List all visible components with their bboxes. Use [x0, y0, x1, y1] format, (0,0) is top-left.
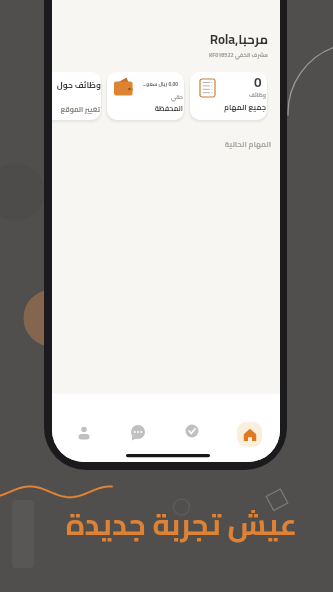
button[interactable] [176, 422, 208, 450]
staticText: وظائف حول [56, 77, 101, 93]
button[interactable]: 0.00 ريال سعو... [107, 72, 184, 120]
staticText: جميع المهام [224, 100, 266, 114]
staticText: مشرف الخفي KF018522 [209, 50, 268, 60]
button[interactable] [68, 422, 100, 450]
staticText: تغيير الموقع [60, 103, 100, 116]
staticText: حقي [171, 92, 183, 102]
staticText: 0.00 ريال سعو... [142, 79, 178, 88]
staticText: مرحبا,Rola [210, 27, 268, 51]
staticText: 0 [254, 72, 262, 94]
button[interactable] [237, 422, 262, 447]
staticText: المحفظة [154, 102, 183, 115]
staticText: المهام الحالية [224, 137, 271, 151]
button[interactable]: وظائف حول [52, 72, 101, 120]
button[interactable] [122, 422, 154, 450]
staticText: عيش تجربة جديدة [65, 496, 297, 552]
staticText: وظائف [248, 90, 266, 100]
button[interactable]: 0 [190, 72, 267, 120]
